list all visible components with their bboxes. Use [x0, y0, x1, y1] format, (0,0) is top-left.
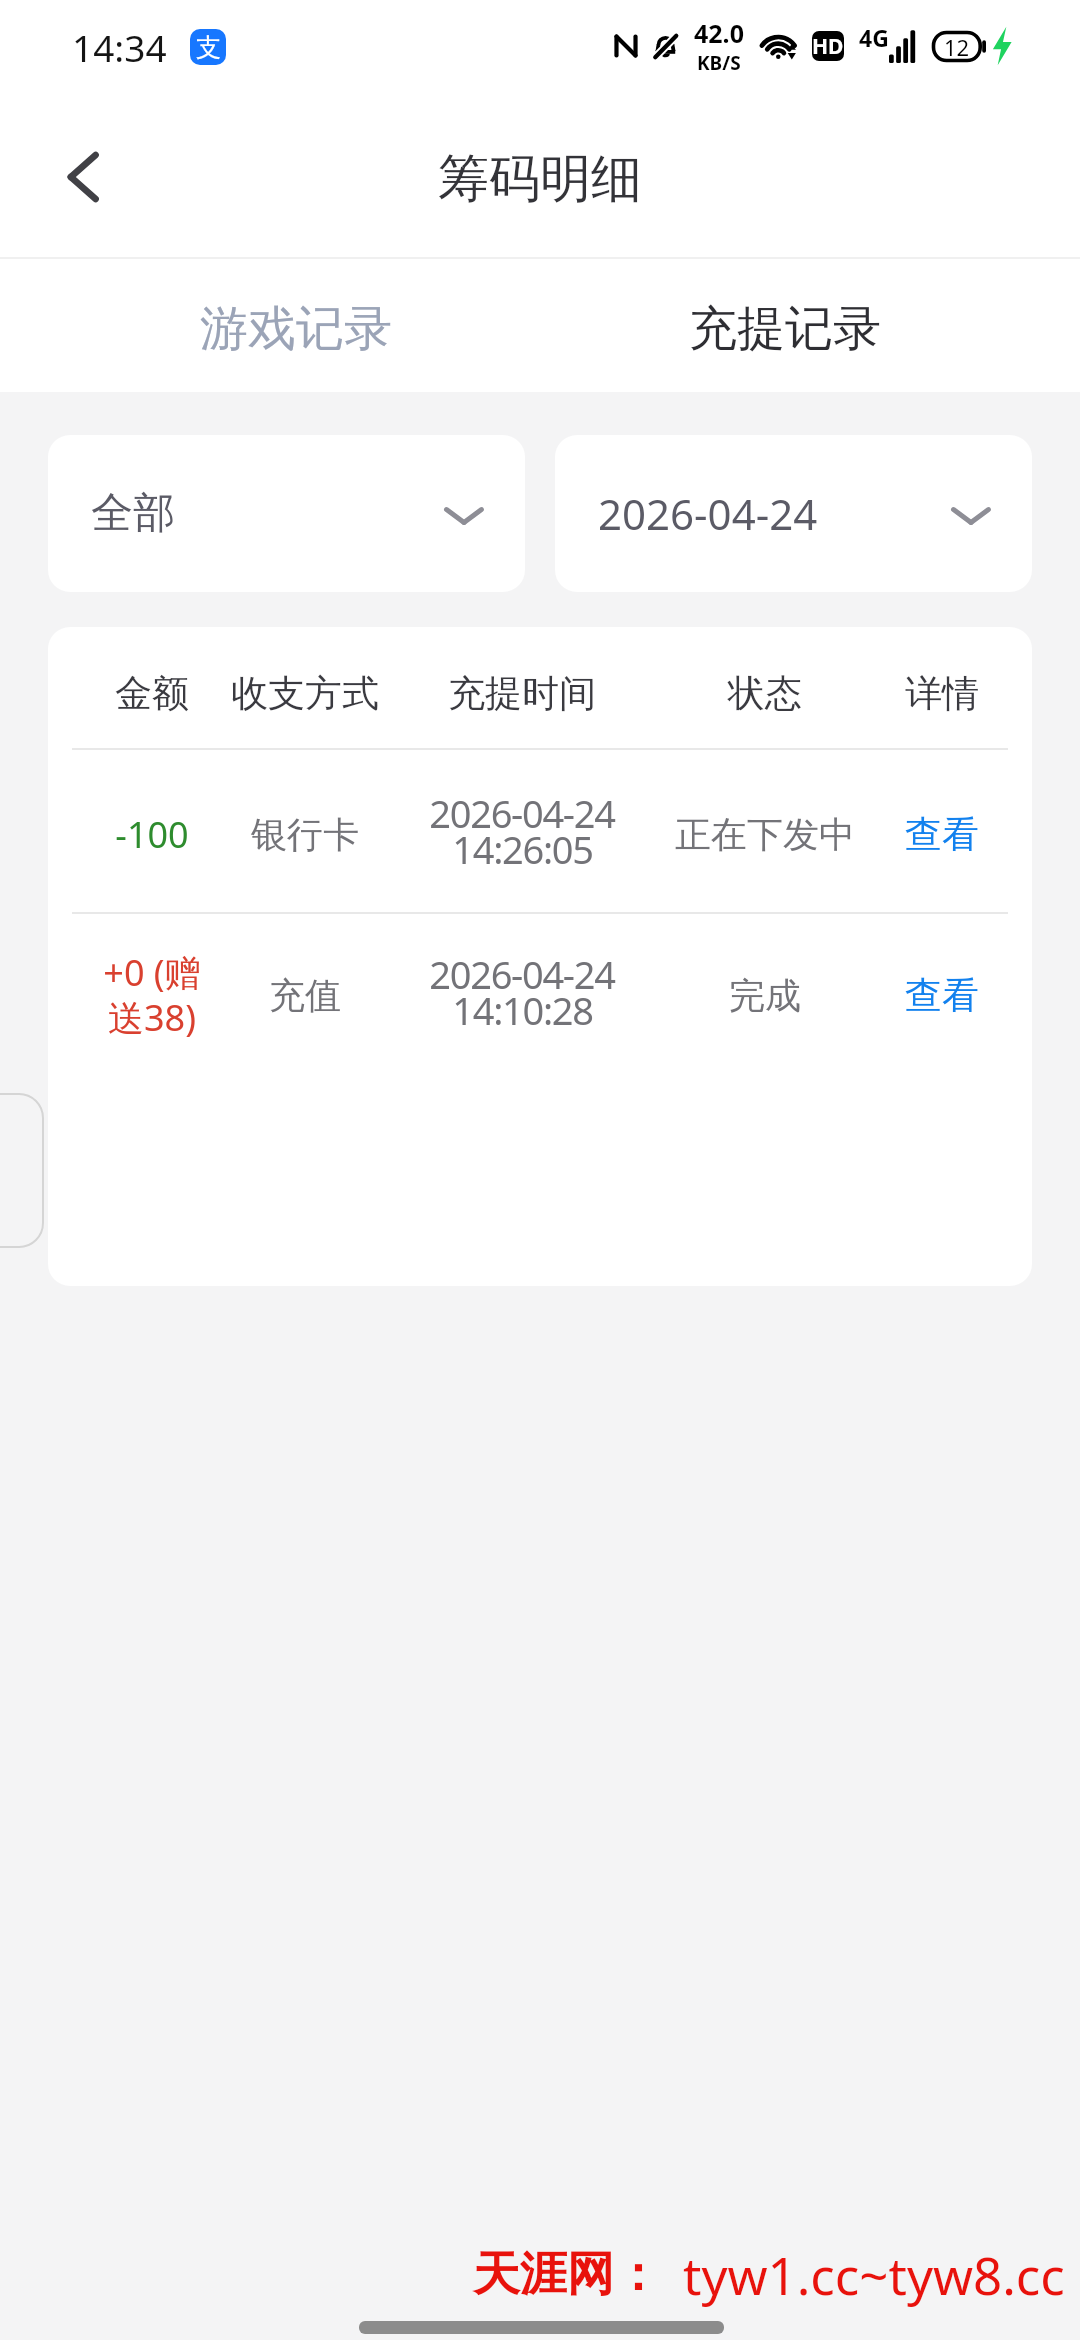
staticText: -100 — [115, 810, 189, 859]
staticText: 充值 — [269, 973, 341, 1018]
staticText: KB/S — [697, 50, 741, 76]
staticText: 42.0 — [694, 16, 744, 50]
staticText: HD — [812, 32, 844, 61]
staticText: 14:10:28 — [452, 984, 593, 1036]
staticText: 14:34 — [72, 22, 167, 72]
button[interactable]: Back — [34, 129, 130, 225]
staticText: +0 (赠 — [103, 948, 201, 997]
staticText: 天涯网： — [473, 2245, 661, 2304]
staticText: 12 — [944, 32, 970, 62]
staticText: tyw1.cc~tyw8.cc — [683, 2240, 1065, 2309]
staticText: 充提时间 — [448, 670, 596, 717]
button[interactable]: 全部 — [48, 435, 525, 592]
staticText: 2026-04-24 — [429, 948, 615, 1000]
staticText: 正在下发中 — [675, 812, 855, 857]
button[interactable]: 充提记录 — [587, 262, 983, 395]
staticText: 收支方式 — [231, 670, 379, 717]
staticText: 全部 — [91, 487, 175, 540]
button[interactable]: 查看 — [852, 782, 1032, 886]
button[interactable]: 查看 — [852, 943, 1032, 1047]
staticText: 2026-04-24 — [429, 787, 615, 839]
staticText: 状态 — [728, 670, 802, 717]
staticText: 游戏记录 — [200, 299, 392, 359]
staticText: 充提记录 — [689, 299, 881, 359]
staticText: 送38) — [108, 993, 196, 1042]
staticText: 详情 — [905, 670, 979, 717]
staticText: 银行卡 — [251, 812, 359, 857]
staticText: 4G — [859, 22, 889, 53]
staticText: 查看 — [905, 811, 979, 858]
staticText: 筹码明细 — [438, 147, 642, 211]
staticText: 2026-04-24 — [598, 485, 818, 542]
staticText: 14:26:05 — [452, 823, 593, 875]
button[interactable]: 2026-04-24 — [555, 435, 1032, 592]
staticText: 支 — [196, 32, 221, 63]
staticText: 完成 — [729, 973, 801, 1018]
staticText: 金额 — [115, 670, 189, 717]
button[interactable]: 游戏记录 — [98, 262, 494, 395]
staticText: 查看 — [905, 972, 979, 1019]
